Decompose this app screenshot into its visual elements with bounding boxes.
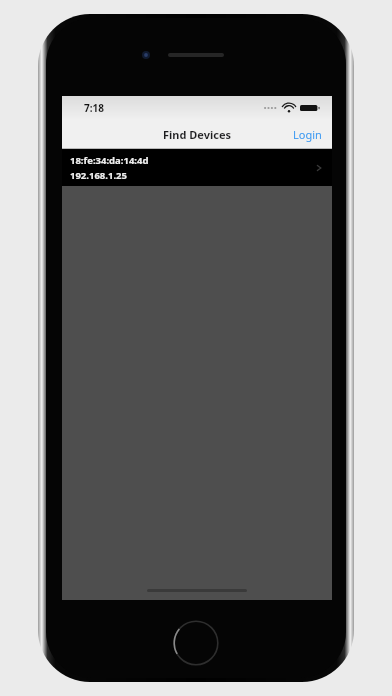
- button[interactable]: Home: [173, 620, 219, 666]
- staticText: 18:fe:34:da:14:4d: [70, 154, 149, 167]
- button[interactable]: Login: [283, 122, 332, 147]
- staticText: 192.168.1.25: [70, 169, 127, 182]
- button[interactable]: 18:fe:34:da:14:4d: [62, 149, 332, 186]
- staticText: Find Devices: [163, 127, 232, 142]
- staticText: 7:18: [84, 101, 104, 115]
- staticText: Login: [293, 127, 322, 142]
- other: Open device details: [314, 163, 324, 173]
